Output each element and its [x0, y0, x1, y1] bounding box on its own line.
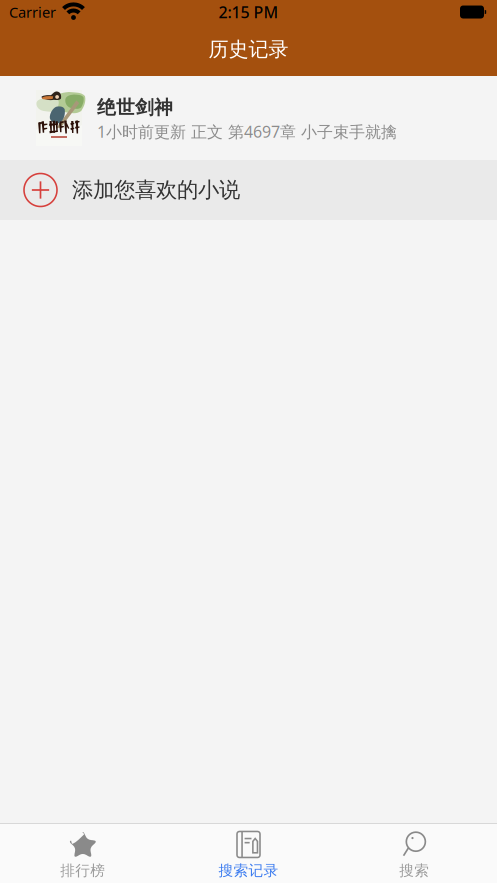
staticText: 添加您喜欢的小说: [72, 177, 240, 203]
staticText: 搜索记录: [218, 861, 278, 879]
staticText: 历史记录: [208, 37, 288, 62]
staticText: 排行榜: [60, 861, 105, 879]
button[interactable]: 搜索: [331, 824, 497, 883]
button[interactable]: 搜索记录: [166, 824, 331, 883]
button[interactable]: 绝世剑神: [0, 76, 497, 160]
staticText: 2:15 PM: [218, 1, 278, 23]
button[interactable]: 排行榜: [0, 824, 166, 883]
button[interactable]: 添加您喜欢的小说: [0, 160, 497, 220]
staticText: 绝世剑神: [97, 96, 173, 119]
staticText: 搜索: [399, 861, 429, 879]
staticText: 1小时前更新 正文 第4697章 小子束手就擒: [97, 121, 397, 142]
staticText: Carrier: [9, 2, 56, 22]
